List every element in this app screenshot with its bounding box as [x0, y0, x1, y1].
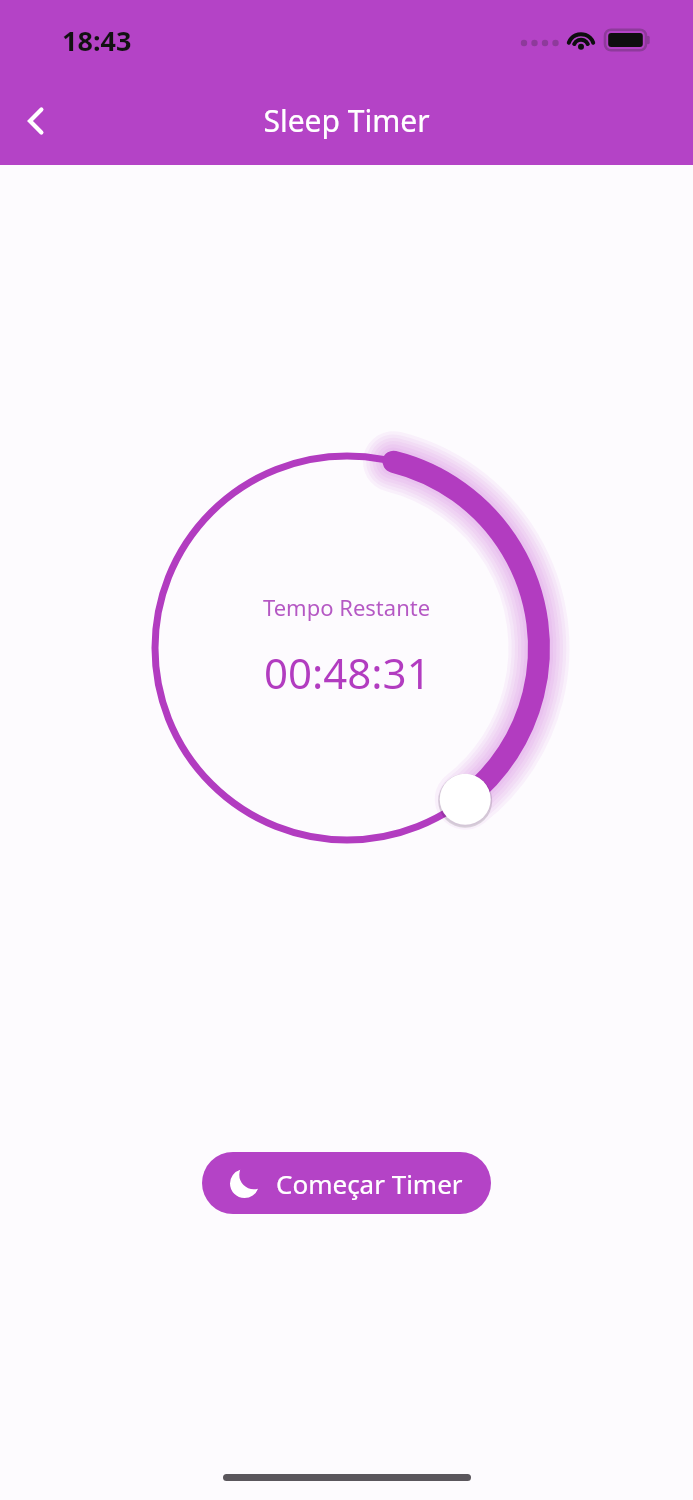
- button[interactable]: Começar Timer: [202, 1152, 491, 1214]
- staticText: 00:48:31: [264, 644, 431, 701]
- staticText: 18:43: [62, 22, 132, 59]
- button[interactable]: Back: [8, 93, 64, 149]
- staticText: Tempo Restante: [263, 592, 431, 622]
- staticText: Começar Timer: [276, 1166, 463, 1201]
- staticText: Sleep Timer: [263, 100, 430, 141]
